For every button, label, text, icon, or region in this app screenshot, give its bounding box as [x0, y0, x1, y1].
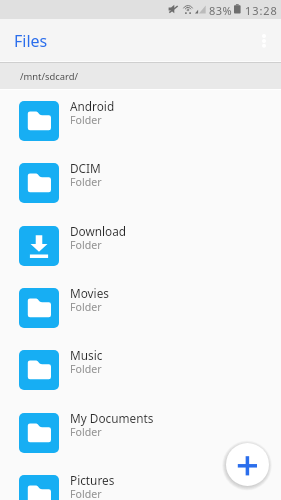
staticText: Folder — [70, 113, 102, 127]
staticText: Folder — [70, 425, 102, 439]
staticText: Folder — [70, 175, 102, 189]
staticText: Folder — [70, 300, 102, 314]
staticText: Pictures — [70, 472, 115, 488]
staticText: 83% — [209, 3, 233, 18]
staticText: Folder — [70, 362, 102, 376]
staticText: Files — [14, 30, 48, 52]
button[interactable]: Pictures — [0, 464, 281, 500]
staticText: Movies — [70, 285, 109, 301]
button[interactable]: Download — [0, 215, 281, 277]
staticText: Folder — [70, 487, 102, 500]
button[interactable]: Android — [0, 90, 281, 152]
staticText: Android — [70, 98, 115, 114]
button[interactable]: Movies — [0, 277, 281, 339]
staticText: Folder — [70, 238, 102, 252]
button[interactable]: My Documents — [0, 402, 281, 464]
staticText: /mnt/sdcard/ — [20, 70, 78, 83]
staticText: My Documents — [70, 410, 154, 426]
button[interactable]: Music — [0, 339, 281, 401]
staticText: DCIM — [70, 160, 101, 176]
staticText: Music — [70, 347, 103, 363]
button[interactable]: DCIM — [0, 152, 281, 214]
staticText: 13:28 — [245, 3, 278, 18]
button[interactable]: Add — [226, 443, 269, 486]
staticText: Download — [70, 223, 127, 239]
